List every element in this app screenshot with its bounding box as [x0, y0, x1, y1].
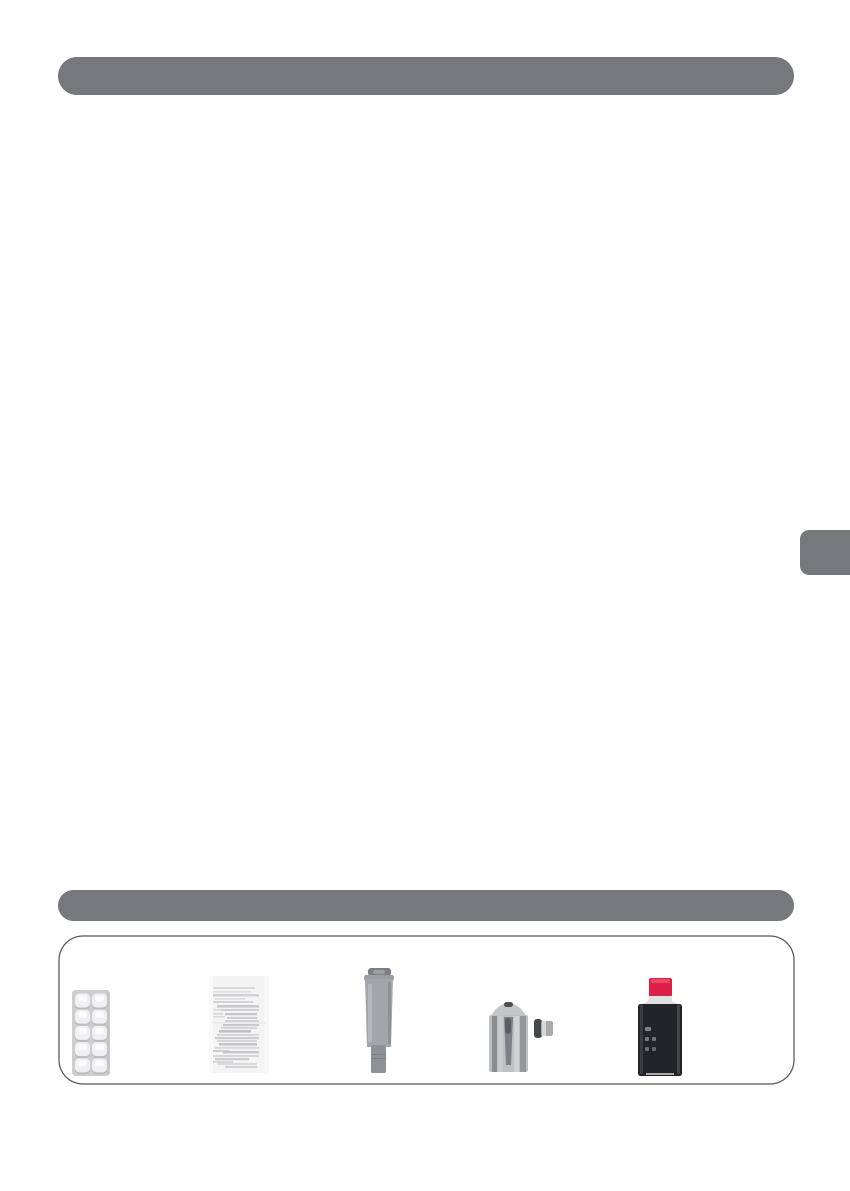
- button[interactable]: Accessories: [59, 936, 794, 1084]
- button[interactable]: Chapter tab: [800, 530, 850, 575]
- button[interactable]: Accessories heading: [58, 890, 794, 921]
- button[interactable]: Section heading: [58, 57, 794, 95]
